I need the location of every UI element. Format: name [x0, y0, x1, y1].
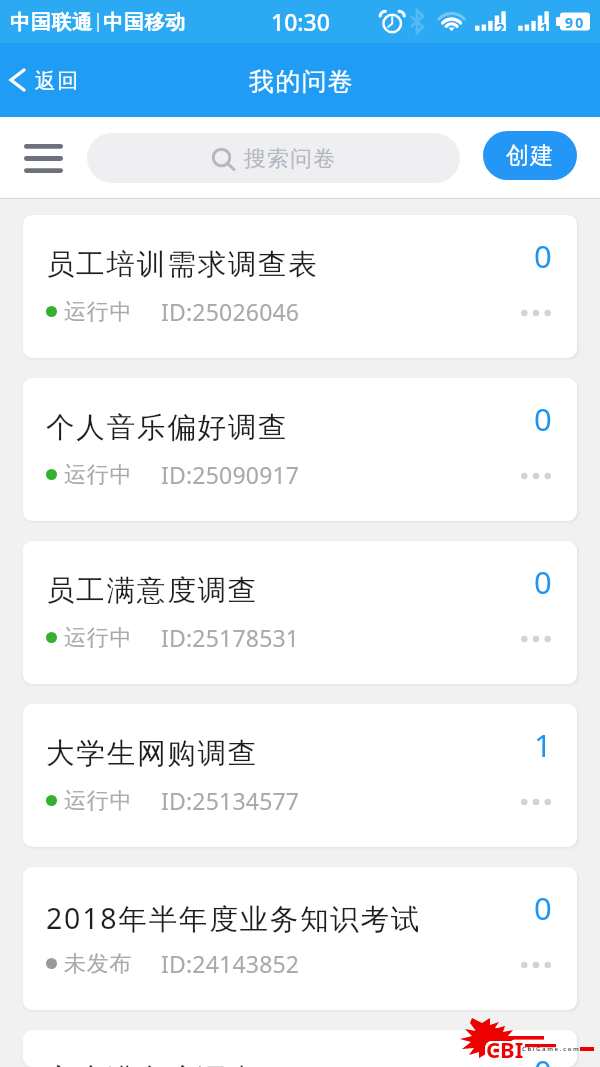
staticText: CBI [485, 1036, 523, 1066]
staticText: 员工满意度调查 [46, 573, 259, 609]
staticText: 运行中 [64, 298, 133, 326]
staticText: CBI [488, 1034, 526, 1064]
staticText: CBI [485, 1034, 523, 1064]
staticText: CBI [484, 1035, 522, 1065]
staticText: 中国联通 [10, 10, 93, 35]
staticText: 0 [534, 887, 552, 929]
staticText: 0 [534, 398, 552, 440]
button[interactable]: 员工培训需求调查表 [23, 215, 577, 358]
staticText: CBI [484, 1032, 522, 1062]
staticText: CBI [485, 1035, 523, 1065]
staticText: 1 [540, 18, 549, 38]
button[interactable]: More options [515, 788, 557, 816]
button[interactable]: More options [515, 462, 557, 490]
staticText: 运行中 [64, 787, 133, 815]
staticText: CBI [488, 1032, 526, 1062]
staticText: C b i G a m e . c o m [522, 1045, 579, 1053]
staticText: CBI [486, 1032, 524, 1062]
staticText: 客户满意度调查 [46, 1062, 259, 1067]
staticText: ID:25134577 [161, 785, 300, 816]
staticText: 搜索问卷 [244, 145, 337, 173]
staticText: 返回 [34, 68, 79, 94]
staticText: 1 [534, 724, 552, 766]
button[interactable]: 搜索问卷 [87, 133, 460, 183]
staticText: ID:25090917 [161, 459, 300, 490]
staticText: CBI [486, 1035, 524, 1065]
button[interactable]: 大学生网购调查 [23, 704, 577, 847]
staticText: 员工培训需求调查表 [46, 247, 319, 283]
button[interactable]: More options [515, 299, 557, 327]
button[interactable]: Menu [12, 132, 75, 184]
staticText: CBI [486, 1033, 524, 1063]
staticText: 中国移动 [103, 10, 186, 35]
button[interactable]: More options [515, 951, 557, 979]
button[interactable]: More options [515, 625, 557, 653]
staticText: 90 [565, 13, 586, 32]
staticText: CBI [487, 1032, 525, 1062]
staticText: CBI [487, 1036, 525, 1066]
staticText: 运行中 [64, 624, 133, 652]
button[interactable]: Back [9, 66, 79, 94]
button[interactable]: 创建 [483, 131, 577, 180]
staticText: CBI [488, 1033, 526, 1063]
staticText: CBI [487, 1035, 525, 1065]
staticText: CBI [484, 1034, 522, 1064]
button[interactable]: 员工满意度调查 [23, 541, 577, 684]
staticText: 0 [534, 235, 552, 277]
staticText: ID:24143852 [161, 948, 300, 979]
button[interactable]: 2018年半年度业务知识考试 [23, 867, 577, 1010]
staticText: CBI [486, 1034, 524, 1064]
staticText: CBI [484, 1033, 522, 1063]
staticText: 2 [496, 18, 505, 38]
staticText: CBI [487, 1033, 525, 1063]
staticText: 创建 [506, 141, 555, 170]
staticText: CBI [486, 1036, 524, 1066]
button[interactable]: 客户满意度调查 [23, 1030, 577, 1067]
staticText: 10:30 [271, 6, 330, 37]
staticText: CBI [488, 1036, 526, 1066]
button[interactable]: 个人音乐偏好调查 [23, 378, 577, 521]
staticText: 个人音乐偏好调查 [46, 410, 289, 446]
staticText: 0 [534, 561, 552, 603]
other: Back [9, 68, 26, 92]
staticText: CBI [485, 1033, 523, 1063]
staticText: 我的问卷 [249, 66, 354, 97]
staticText: CBI [487, 1034, 525, 1064]
staticText: CBI [488, 1035, 526, 1065]
staticText: ID:25026046 [161, 296, 300, 327]
staticText: 0 [534, 1050, 552, 1067]
staticText: ID:25178531 [161, 622, 300, 653]
staticText: CBI [484, 1036, 522, 1066]
staticText: 2018年半年度业务知识考试 [46, 899, 422, 938]
staticText: 大学生网购调查 [46, 736, 259, 772]
staticText: 未发布 [64, 950, 133, 978]
staticText: CBI [485, 1032, 523, 1062]
staticText: 运行中 [64, 461, 133, 489]
